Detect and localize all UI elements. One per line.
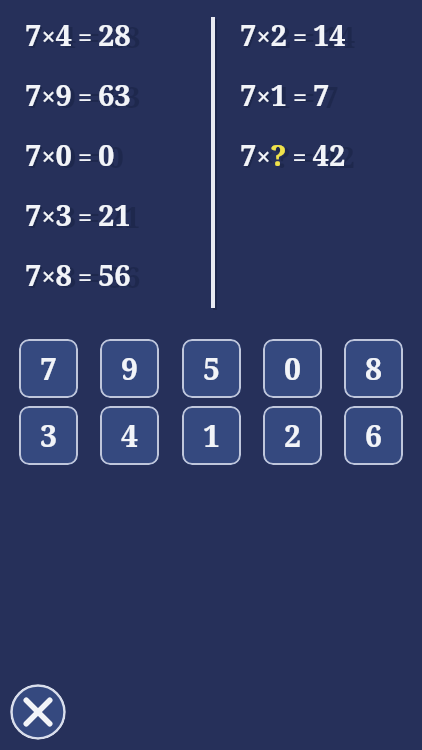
staticText: 9: [121, 348, 138, 389]
staticText: 7×4 = 28: [27, 17, 141, 56]
button[interactable]: 6: [344, 406, 403, 465]
staticText: 7×? = 42: [242, 137, 355, 176]
staticText: 7×4 = 28: [25, 15, 131, 54]
staticText: 8: [365, 348, 382, 389]
button[interactable]: 5: [182, 339, 241, 398]
staticText: 7×0 = 0: [27, 137, 125, 176]
button[interactable]: 4: [100, 406, 159, 465]
button[interactable]: 2: [263, 406, 322, 465]
button[interactable]: Close: [10, 684, 66, 740]
staticText: 6: [365, 415, 382, 456]
button[interactable]: 3: [19, 406, 78, 465]
staticText: 7×9 = 63: [27, 77, 141, 116]
staticText: 7×2 = 14: [242, 17, 356, 56]
staticText: 7×1 = 7: [240, 75, 330, 114]
staticText: 7×0 = 0: [25, 135, 115, 174]
staticText: 7×9 = 63: [25, 75, 131, 114]
staticText: 7×1 = 7: [242, 77, 340, 116]
staticText: 3: [40, 415, 57, 456]
staticText: 7×? = 42: [240, 135, 346, 174]
staticText: 7: [40, 348, 57, 389]
staticText: 7×8 = 56: [25, 255, 131, 294]
staticText: 7×3 = 21: [25, 195, 131, 234]
button[interactable]: 9: [100, 339, 159, 398]
button[interactable]: 8: [344, 339, 403, 398]
staticText: 7×8 = 56: [27, 257, 141, 296]
staticText: 0: [284, 348, 301, 389]
staticText: 7×3 = 21: [27, 197, 141, 236]
staticText: 4: [121, 415, 138, 456]
button[interactable]: 7: [19, 339, 78, 398]
staticText: 1: [203, 415, 220, 456]
staticText: 5: [203, 348, 220, 389]
staticText: 2: [284, 415, 301, 456]
button[interactable]: 0: [263, 339, 322, 398]
staticText: 7×2 = 14: [240, 15, 346, 54]
button[interactable]: 1: [182, 406, 241, 465]
